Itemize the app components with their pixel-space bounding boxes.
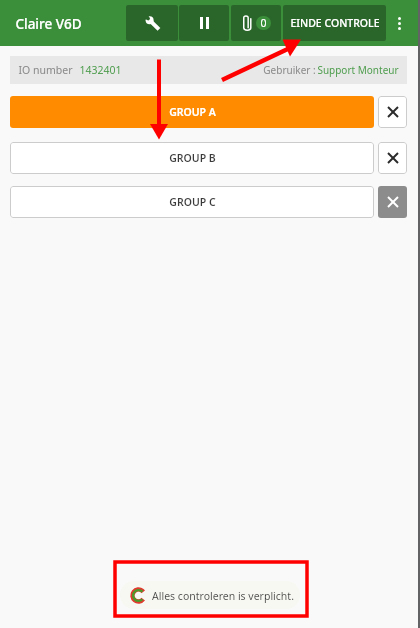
button[interactable]: EINDE CONTROLE [283,5,386,41]
staticText: IO number [18,63,73,77]
button[interactable]: Tools [126,5,178,41]
staticText: EINDE CONTROLE [290,16,380,30]
staticText: Support Monteur [317,63,399,77]
staticText: GROUP C [169,195,216,209]
staticText: GROUP A [169,105,216,119]
button[interactable]: GROUP B [10,142,374,174]
staticText: Claire V6D [15,15,82,33]
staticText: 1432401 [79,63,122,77]
staticText: GROUP B [169,151,216,165]
button[interactable]: Remove GROUP B [378,142,407,174]
staticText: Gebruiker : [262,63,317,77]
button[interactable]: Pause [179,5,229,41]
button[interactable]: GROUP C [10,186,374,218]
staticText: Alles controleren is verplicht. [152,589,294,603]
button[interactable]: Attachments [231,5,281,41]
button[interactable]: Remove GROUP A [378,96,407,128]
staticText: 0 [260,16,267,30]
button[interactable]: GROUP A [10,96,374,128]
button[interactable]: Alles controleren is verplicht. [120,581,300,609]
button[interactable]: More options [388,0,410,46]
button[interactable]: Remove GROUP C [378,186,407,218]
